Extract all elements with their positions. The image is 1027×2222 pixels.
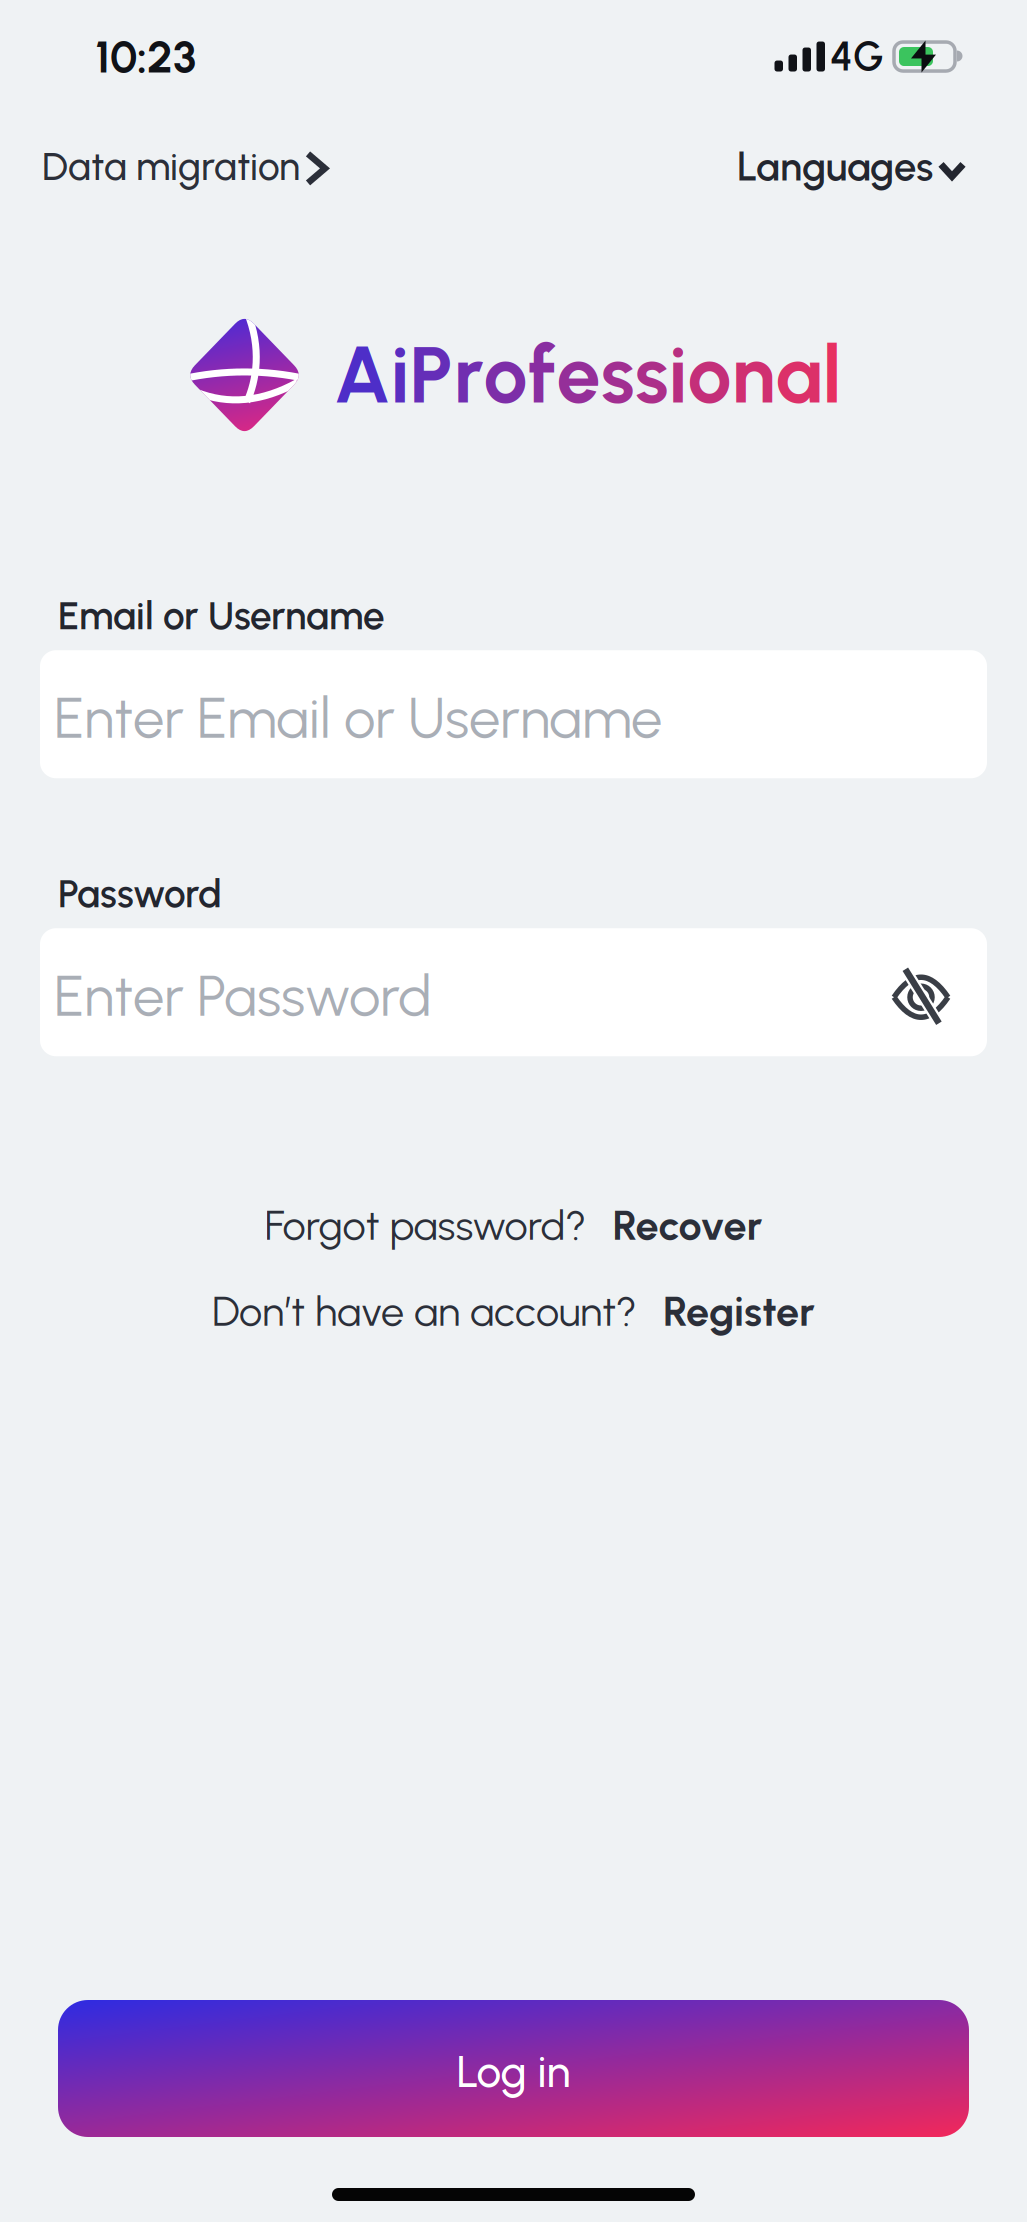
staticText: s [600, 329, 634, 421]
staticText: s [634, 329, 668, 421]
staticText: Register [663, 1287, 815, 1335]
staticText: Languages [737, 143, 933, 190]
staticText: r [453, 329, 483, 421]
staticText: Password [58, 871, 222, 916]
staticText: P [409, 329, 453, 421]
staticText: Don’t have an account? [212, 1287, 637, 1335]
staticText: 10:23 [95, 30, 196, 83]
staticText: Recover [612, 1201, 762, 1249]
staticText: Enter Password [54, 963, 432, 1029]
staticText: Enter Email or Username [54, 685, 662, 751]
staticText: 4G [830, 33, 884, 80]
staticText: i [668, 329, 687, 421]
staticText: Email or Username [58, 593, 385, 638]
staticText: n [731, 329, 775, 421]
staticText: f [527, 329, 556, 421]
staticText: o [483, 329, 527, 421]
staticText: Data migration [42, 144, 300, 189]
staticText: a [775, 329, 822, 421]
staticText: l [822, 329, 841, 421]
staticText: Log in [456, 2046, 570, 2097]
staticText: A [333, 329, 390, 421]
staticText: Forgot password? [264, 1201, 586, 1249]
staticText: i [390, 329, 409, 421]
staticText: o [687, 329, 731, 421]
staticText: e [556, 329, 600, 421]
